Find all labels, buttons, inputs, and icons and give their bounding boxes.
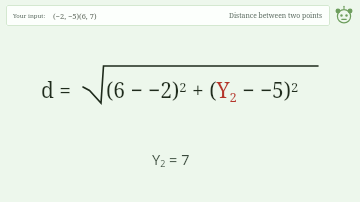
staticText: d = [41, 76, 72, 105]
staticText: (−2, −5)(6, 7) [53, 11, 97, 21]
button[interactable]: App logo [333, 4, 355, 26]
staticText: Distance between two points [229, 11, 323, 20]
button[interactable]: Your input: [6, 5, 330, 26]
staticText: Y2 = 7 [152, 149, 190, 170]
staticText: (6 − −2)2 + (Y2 − −5)2 [106, 76, 299, 106]
staticText: Your input: [13, 12, 46, 20]
